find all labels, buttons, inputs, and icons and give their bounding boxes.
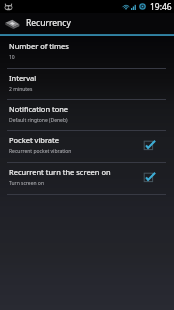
button[interactable]: Interval <box>0 68 174 100</box>
other: System <box>4 2 13 11</box>
staticText: Pocket vibrate <box>9 135 60 145</box>
other: App icon <box>5 18 20 29</box>
staticText: 2 minutes <box>9 86 33 93</box>
staticText: Recurrent pocket vibration <box>9 148 72 155</box>
staticText: Interval <box>9 73 37 83</box>
button[interactable]: Pocket vibrate <box>0 130 174 162</box>
button[interactable]: Number of times <box>0 36 174 68</box>
staticText: Number of times <box>9 41 69 51</box>
other: Toggle <box>143 171 157 185</box>
staticText: Recurrency <box>26 17 71 29</box>
staticText: 10 <box>9 54 15 61</box>
staticText: 19:46 <box>150 1 172 13</box>
button[interactable]: App icon <box>0 13 174 34</box>
staticText: Turn screen on <box>9 180 44 187</box>
other: Toggle <box>143 139 157 153</box>
button[interactable]: Recurrent turn the screen on <box>0 162 174 194</box>
staticText: Notification tone <box>9 104 69 114</box>
button[interactable]: Notification tone <box>0 99 174 131</box>
staticText: Default ringtone (Deneb) <box>9 117 68 124</box>
staticText: Recurrent turn the screen on <box>9 167 111 177</box>
